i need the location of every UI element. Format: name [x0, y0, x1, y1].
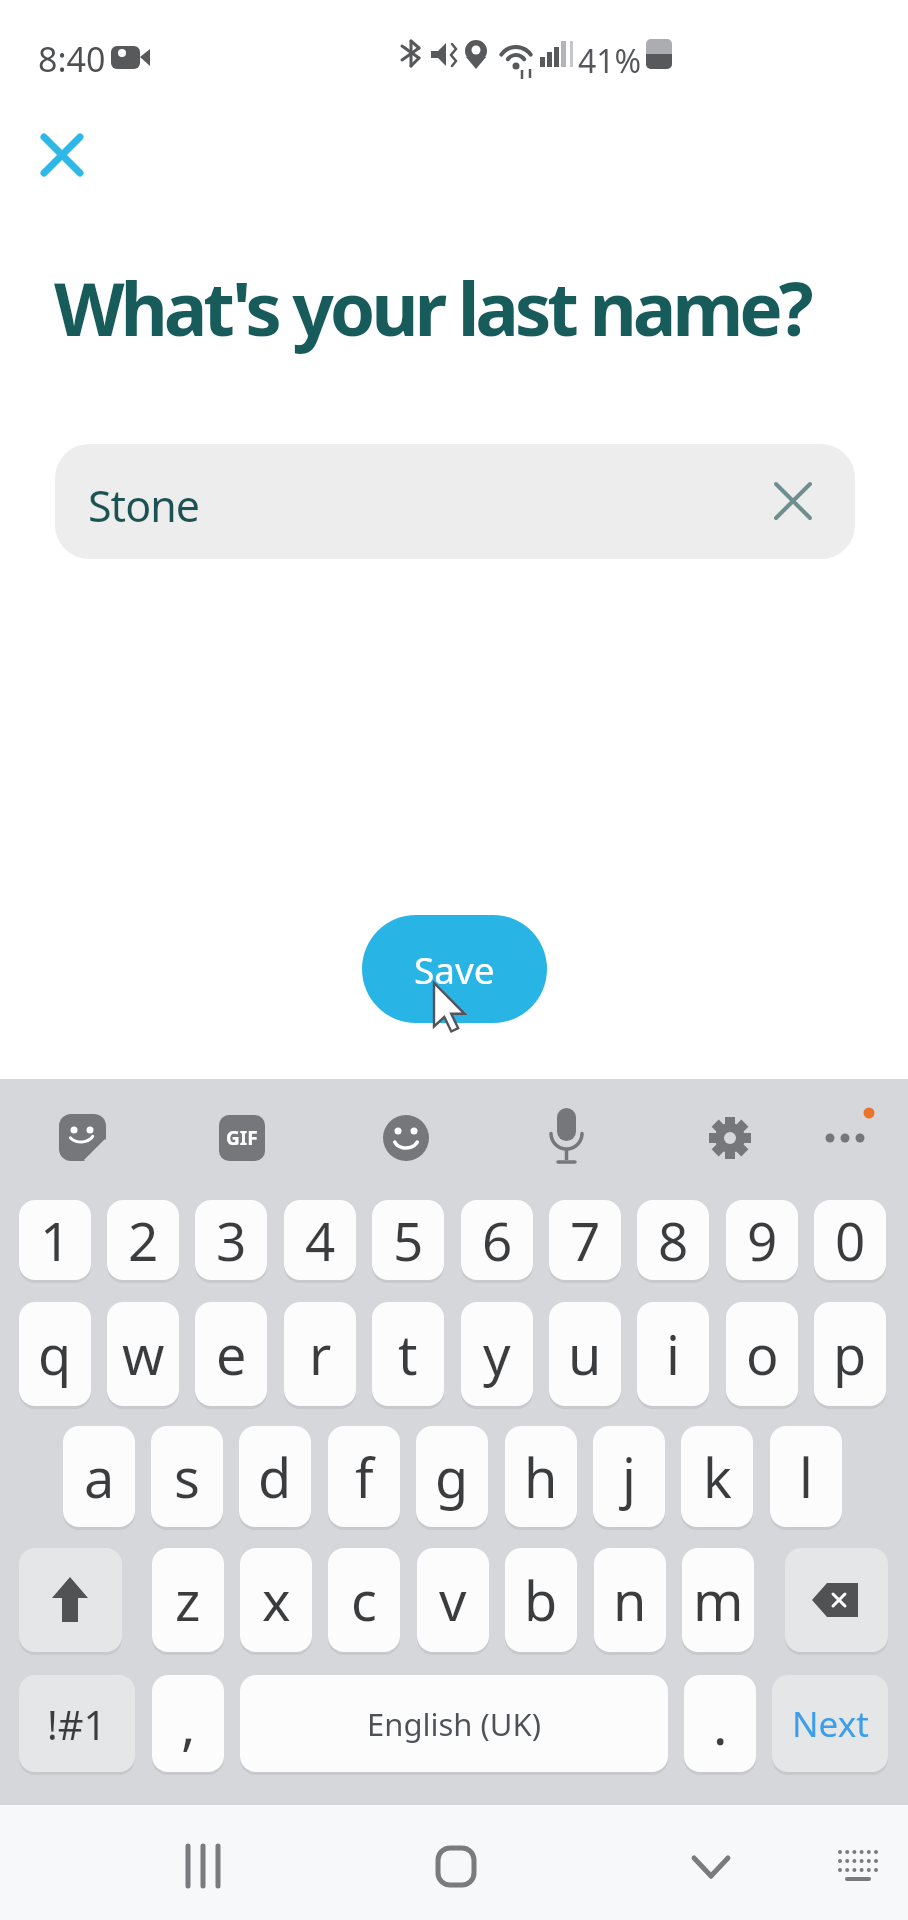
- staticText: 6: [482, 1204, 513, 1276]
- staticText: g: [435, 1440, 469, 1514]
- staticText: b: [524, 1563, 558, 1637]
- staticText: GIF: [226, 1125, 258, 1151]
- staticText: k: [703, 1440, 732, 1514]
- staticText: 8:40: [38, 36, 106, 82]
- staticText: .: [713, 1687, 728, 1761]
- staticText: 3: [216, 1204, 247, 1276]
- staticText: h: [524, 1440, 558, 1514]
- staticText: 1: [40, 1204, 71, 1276]
- staticText: 8: [658, 1204, 689, 1276]
- staticText: f: [355, 1440, 374, 1514]
- staticText: i: [666, 1317, 680, 1391]
- staticText: p: [833, 1317, 867, 1391]
- staticText: 7: [570, 1204, 601, 1276]
- staticText: o: [746, 1317, 779, 1391]
- staticText: 5: [393, 1204, 424, 1276]
- staticText: m: [693, 1563, 744, 1637]
- staticText: 0: [835, 1204, 866, 1276]
- staticText: a: [84, 1440, 115, 1514]
- staticText: c: [351, 1563, 377, 1637]
- staticText: r: [309, 1317, 332, 1391]
- staticText: !#1: [47, 1697, 107, 1751]
- staticText: What's your last name?: [54, 258, 810, 357]
- staticText: j: [622, 1440, 636, 1514]
- staticText: 2: [128, 1204, 159, 1276]
- staticText: ,: [181, 1687, 196, 1761]
- staticText: y: [483, 1317, 511, 1391]
- staticText: l: [799, 1440, 813, 1514]
- staticText: 41%: [578, 39, 642, 83]
- staticText: v: [439, 1563, 467, 1637]
- staticText: 9: [747, 1204, 778, 1276]
- staticText: u: [568, 1317, 602, 1391]
- staticText: d: [258, 1440, 292, 1514]
- staticText: n: [613, 1563, 647, 1637]
- staticText: w: [122, 1317, 165, 1391]
- staticText: q: [38, 1317, 72, 1391]
- staticText: Stone: [88, 476, 199, 535]
- staticText: English (UK): [367, 1703, 541, 1745]
- staticText: Next: [792, 1700, 869, 1748]
- staticText: 4: [305, 1204, 336, 1276]
- staticText: s: [174, 1440, 200, 1514]
- staticText: t: [398, 1317, 418, 1391]
- staticText: e: [216, 1317, 247, 1391]
- staticText: Save: [414, 944, 495, 994]
- staticText: z: [175, 1563, 201, 1637]
- staticText: x: [262, 1563, 291, 1637]
